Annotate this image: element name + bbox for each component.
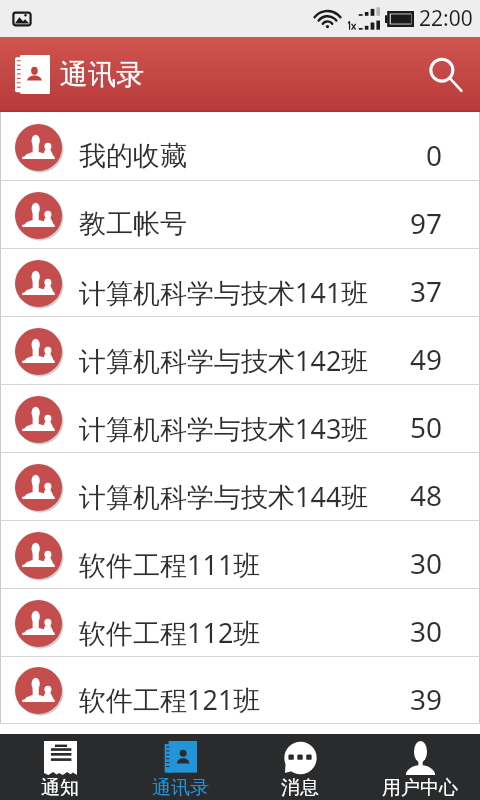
button[interactable]: 计算机科学与技术141班 — [0, 249, 480, 317]
staticText: 软件工程112班 — [79, 614, 261, 651]
button[interactable]: 计算机科学与技术143班 — [0, 385, 480, 453]
staticText: 0 — [426, 136, 443, 174]
staticText: 30 — [410, 612, 443, 650]
staticText: 39 — [410, 680, 443, 718]
staticText: 计算机科学与技术142班 — [79, 342, 369, 379]
staticText: 22:00 — [419, 4, 473, 33]
staticText: 97 — [410, 204, 443, 242]
button[interactable]: 计算机科学与技术144班 — [0, 453, 480, 521]
button[interactable]: 消息 — [240, 734, 360, 800]
staticText: 计算机科学与技术144班 — [79, 478, 369, 515]
staticText: 49 — [410, 340, 443, 378]
staticText: 用户中心 — [382, 776, 458, 800]
button[interactable]: 教工帐号 — [0, 181, 480, 249]
button[interactable]: 软件工程111班 — [0, 521, 480, 589]
staticText: 通讯录 — [152, 776, 209, 800]
staticText: 计算机科学与技术141班 — [79, 274, 369, 311]
staticText: 48 — [410, 476, 443, 514]
staticText: 我的收藏 — [79, 139, 187, 173]
staticText: 计算机科学与技术143班 — [79, 410, 369, 447]
button[interactable]: Search — [420, 49, 472, 101]
button[interactable]: 用户中心 — [360, 734, 480, 800]
staticText: 教工帐号 — [79, 207, 187, 241]
staticText: 37 — [410, 272, 443, 310]
button[interactable]: 通讯录 — [120, 734, 240, 800]
staticText: 通知 — [41, 776, 79, 800]
staticText: 软件工程111班 — [79, 546, 261, 583]
button[interactable]: 我的收藏 — [0, 113, 480, 181]
button[interactable]: 软件工程112班 — [0, 589, 480, 657]
staticText: 软件工程121班 — [79, 681, 261, 718]
button[interactable]: 通知 — [0, 734, 120, 800]
staticText: 30 — [410, 544, 443, 582]
staticText: 50 — [410, 408, 443, 446]
button[interactable]: 计算机科学与技术142班 — [0, 317, 480, 385]
button[interactable]: 软件工程121班 — [0, 657, 480, 724]
staticText: 通讯录 — [60, 57, 144, 92]
staticText: 消息 — [281, 776, 319, 800]
